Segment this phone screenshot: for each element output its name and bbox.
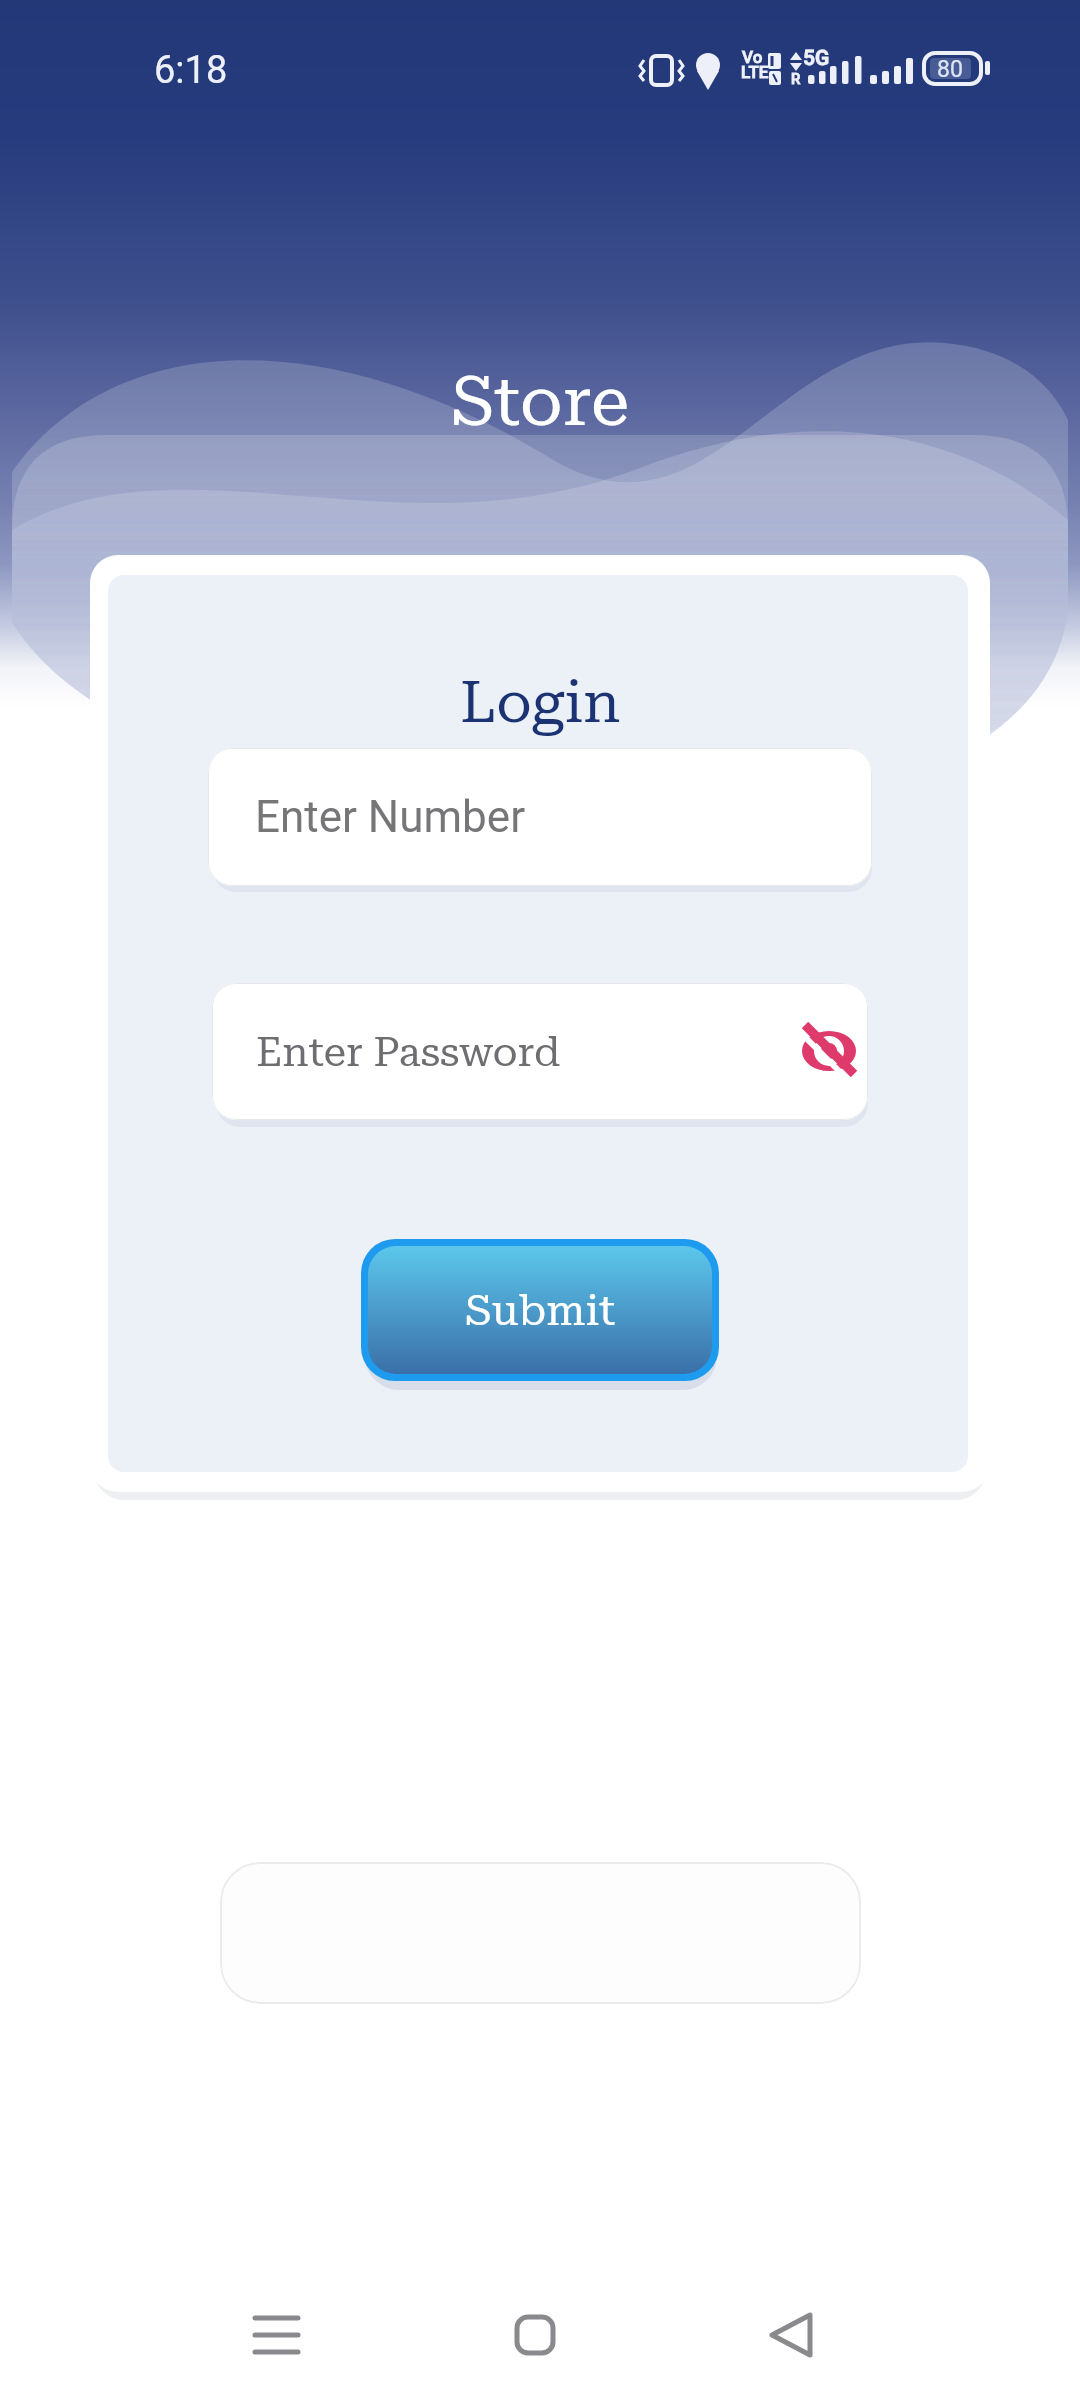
staticText: 80 (937, 56, 963, 83)
button[interactable] (495, 2295, 575, 2375)
staticText: Store (451, 360, 630, 442)
button[interactable]: Enter Number (208, 748, 872, 886)
staticText: Vo (742, 47, 763, 67)
staticText: 6:18 (154, 48, 228, 93)
staticText: Enter Number (255, 791, 526, 843)
button[interactable] (237, 2295, 317, 2375)
staticText: 5G (803, 46, 830, 71)
button[interactable] (752, 2295, 832, 2375)
staticText: R (791, 70, 801, 88)
staticText: LTE (741, 62, 769, 82)
staticText: Submit (465, 1285, 616, 1335)
button[interactable]: Enter Password (212, 983, 868, 1120)
staticText: Enter Password (256, 1028, 561, 1076)
staticText: Login (460, 668, 621, 736)
button[interactable] (795, 1017, 867, 1089)
button[interactable]: Submit (361, 1239, 719, 1381)
